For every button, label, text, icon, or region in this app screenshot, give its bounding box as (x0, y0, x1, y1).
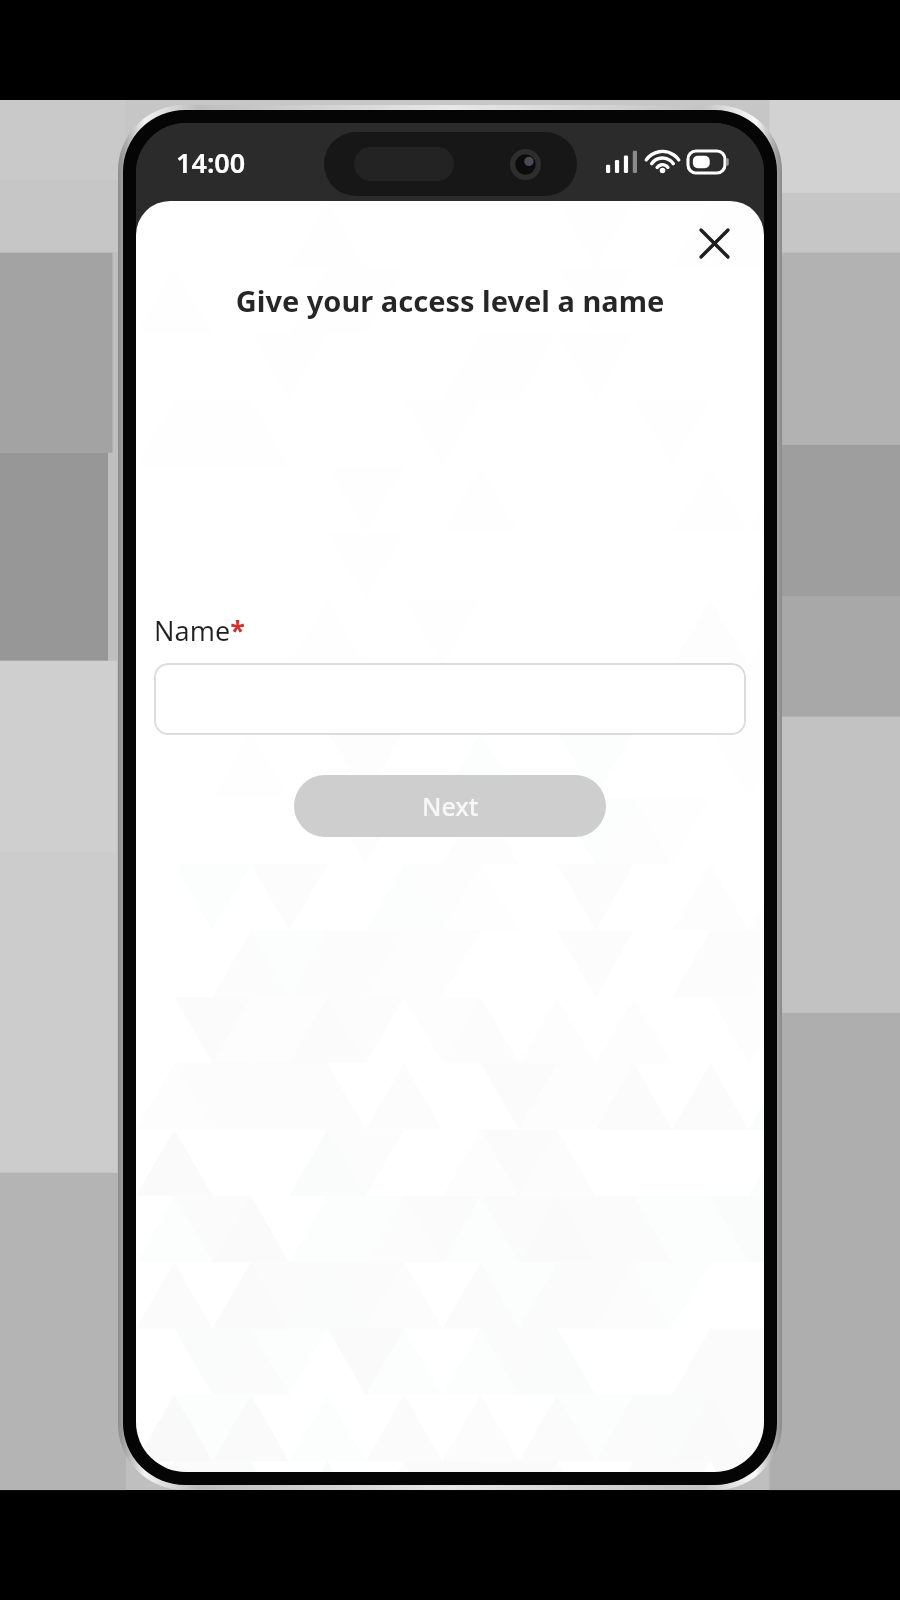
staticText: 14:00 (176, 144, 246, 181)
staticText: Next (422, 789, 479, 823)
button[interactable]: Next (294, 775, 606, 837)
button[interactable]: Name input (154, 663, 746, 735)
staticText: Give your access level a name (160, 281, 740, 320)
button[interactable]: Close (686, 215, 742, 271)
staticText: Name* (154, 612, 245, 649)
